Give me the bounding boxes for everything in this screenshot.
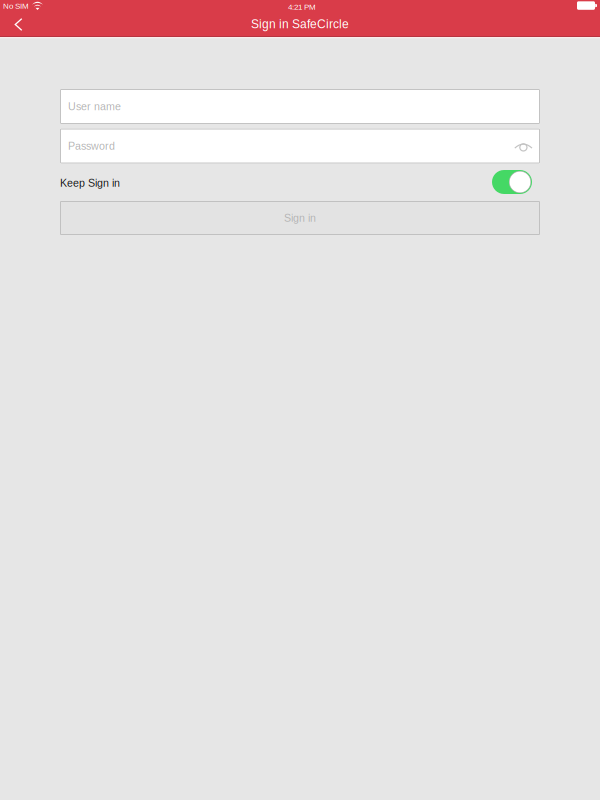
staticText: No SIM <box>3 1 29 10</box>
staticText: Sign in <box>284 212 316 224</box>
staticText: Sign in SafeCircle <box>251 17 349 31</box>
staticText: 4:21 PM <box>288 2 316 11</box>
button[interactable]: Keep Sign in <box>492 170 532 194</box>
staticText: Keep Sign in <box>60 177 120 189</box>
button[interactable]: Back <box>2 13 34 35</box>
staticText: User name <box>68 100 121 112</box>
staticText: Password <box>68 140 115 152</box>
button[interactable]: Sign in <box>60 201 540 235</box>
button[interactable]: Password <box>60 128 540 163</box>
button[interactable]: User name <box>60 89 540 124</box>
